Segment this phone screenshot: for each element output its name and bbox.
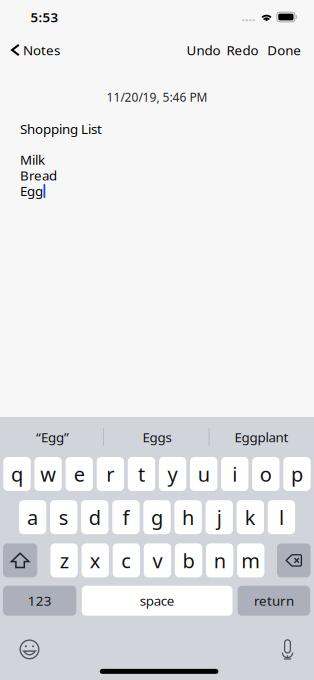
staticText: Eggs — [142, 428, 171, 446]
staticText: 123 — [28, 592, 52, 609]
button[interactable]: s — [50, 500, 77, 534]
button[interactable]: l — [268, 500, 295, 534]
button[interactable]: v — [144, 543, 171, 577]
button[interactable]: Notes — [0, 38, 64, 62]
button[interactable]: return — [238, 586, 310, 616]
staticText: k — [245, 504, 256, 530]
button[interactable]: y — [159, 457, 186, 491]
staticText: x — [90, 547, 101, 574]
button[interactable]: b — [175, 543, 202, 577]
staticText: b — [182, 547, 194, 574]
staticText: 5:53 — [30, 8, 58, 26]
button[interactable]: i — [221, 457, 248, 491]
button[interactable]: Eggs — [105, 417, 209, 457]
staticText: Done — [267, 41, 301, 59]
button[interactable]: Shift — [3, 543, 37, 577]
staticText: m — [241, 547, 260, 574]
button[interactable]: x — [82, 543, 109, 577]
staticText: Redo — [226, 41, 258, 59]
button[interactable]: f — [112, 500, 140, 534]
staticText: 11/20/19, 5:46 PM — [106, 89, 207, 105]
staticText: a — [27, 504, 38, 530]
button[interactable]: w — [34, 457, 62, 491]
staticText: r — [106, 461, 114, 487]
staticText: o — [260, 461, 272, 487]
button[interactable]: Dictation — [279, 637, 295, 661]
staticText: c — [121, 547, 131, 574]
staticText: y — [168, 461, 178, 487]
staticText: v — [152, 547, 162, 574]
staticText: Undo — [186, 41, 220, 59]
staticText: Eggplant — [235, 428, 289, 446]
staticText: Egg — [20, 182, 43, 200]
button[interactable]: “Egg” — [0, 417, 105, 457]
button[interactable]: e — [66, 457, 93, 491]
button[interactable]: 123 — [3, 586, 76, 616]
staticText: Bread — [20, 166, 57, 184]
staticText: q — [11, 461, 23, 487]
button[interactable]: t — [128, 457, 155, 491]
button[interactable]: z — [50, 543, 78, 577]
staticText: t — [138, 461, 145, 487]
staticText: n — [214, 547, 226, 574]
staticText: return — [254, 592, 294, 609]
staticText: Shopping List — [20, 120, 102, 138]
staticText: e — [74, 461, 85, 487]
button[interactable]: k — [237, 500, 264, 534]
staticText: l — [279, 504, 284, 530]
button[interactable]: a — [19, 500, 46, 534]
button[interactable]: h — [174, 500, 202, 534]
button[interactable]: p — [283, 457, 311, 491]
button[interactable]: Done — [264, 38, 304, 62]
staticText: j — [217, 504, 222, 530]
button[interactable]: Emoji — [20, 637, 39, 661]
button[interactable]: Undo — [183, 38, 223, 62]
button[interactable]: n — [206, 543, 233, 577]
button[interactable]: q — [3, 457, 31, 491]
staticText: Milk — [20, 151, 45, 168]
staticText: g — [151, 504, 163, 530]
button[interactable]: u — [190, 457, 217, 491]
staticText: p — [291, 461, 303, 487]
button[interactable]: Redo — [223, 38, 261, 62]
button[interactable]: space — [82, 586, 232, 616]
staticText: s — [59, 504, 69, 530]
button[interactable]: o — [252, 457, 279, 491]
button[interactable]: j — [206, 500, 233, 534]
staticText: f — [122, 504, 129, 530]
staticText: z — [60, 547, 69, 574]
staticText: h — [182, 504, 194, 530]
button[interactable]: Eggplant — [209, 417, 314, 457]
staticText: i — [232, 461, 237, 487]
button[interactable]: r — [97, 457, 124, 491]
button[interactable]: d — [81, 500, 108, 534]
button[interactable]: Delete — [277, 543, 311, 577]
staticText: u — [198, 461, 210, 487]
staticText: d — [89, 504, 101, 530]
staticText: “Egg” — [36, 428, 69, 446]
staticText: Notes — [23, 41, 60, 59]
staticText: w — [40, 461, 56, 487]
staticText: space — [140, 592, 175, 609]
button[interactable]: m — [237, 543, 264, 577]
button[interactable]: g — [143, 500, 171, 534]
button[interactable]: c — [113, 543, 140, 577]
